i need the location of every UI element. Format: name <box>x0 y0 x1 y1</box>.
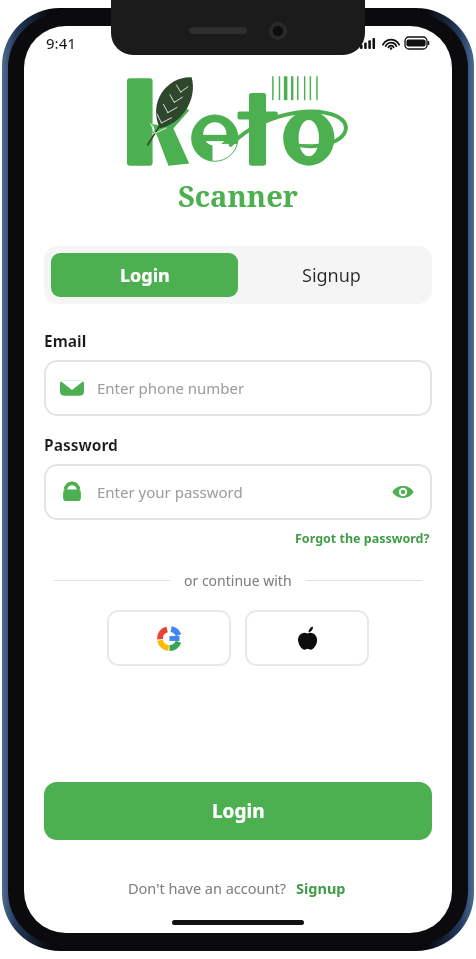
button[interactable]: Sign in with Google <box>107 610 231 666</box>
button[interactable]: Login <box>51 253 238 297</box>
button[interactable]: Enter phone number <box>44 360 432 416</box>
staticText: Password <box>44 434 118 455</box>
button[interactable]: Enter your password <box>44 464 432 520</box>
staticText: Login <box>212 798 265 824</box>
staticText: Scanner <box>178 176 298 215</box>
button[interactable]: Forgot the password? <box>293 528 432 549</box>
staticText: Login <box>120 263 170 288</box>
staticText: Signup <box>302 263 361 288</box>
button[interactable]: Signup <box>294 876 348 900</box>
staticText: 9:41 <box>46 33 76 53</box>
staticText: Forgot the password? <box>295 530 430 547</box>
staticText: Enter your password <box>97 482 243 502</box>
button[interactable]: Show password <box>390 479 416 505</box>
button[interactable]: Sign in with Apple <box>245 610 369 666</box>
staticText: Signup <box>296 878 346 898</box>
button[interactable]: Signup <box>238 253 425 297</box>
staticText: Enter phone number <box>97 378 245 398</box>
staticText: or continue with <box>184 571 292 590</box>
button[interactable]: Login <box>44 782 432 840</box>
staticText: Don't have an account? <box>128 878 286 898</box>
staticText: Email <box>44 330 87 351</box>
